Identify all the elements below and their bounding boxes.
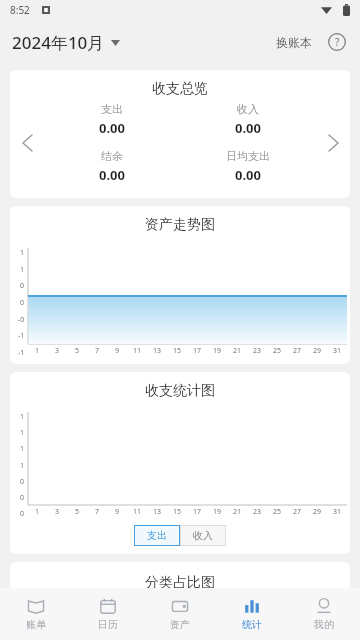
staticText: -1 (18, 331, 25, 341)
staticText: 资产 (170, 618, 190, 631)
staticText: 23 (253, 346, 262, 356)
staticText: 我的 (314, 618, 334, 631)
staticText: 15 (173, 507, 182, 517)
staticText: 1 (20, 444, 25, 454)
staticText: 0.00 (99, 119, 125, 137)
staticText: 1 (35, 346, 40, 356)
staticText: 17 (193, 346, 202, 356)
staticText: 1 (35, 507, 40, 517)
staticText: 1 (20, 461, 25, 471)
staticText: 7 (95, 507, 100, 517)
staticText: 25 (273, 346, 282, 356)
staticText: 0 (20, 477, 25, 487)
staticText: 13 (153, 346, 162, 356)
staticText: 21 (233, 507, 242, 517)
staticText: 8:52 (10, 3, 30, 17)
staticText: 0 (20, 281, 25, 291)
staticText: 0 (20, 509, 25, 519)
staticText: ? (335, 35, 340, 49)
staticText: 0 (20, 298, 25, 308)
staticText: 9 (115, 507, 120, 517)
staticText: 11 (133, 507, 142, 517)
button[interactable]: 资产 (144, 588, 216, 640)
staticText: 29 (313, 346, 322, 356)
staticText: 2024年10月 (12, 31, 105, 54)
button[interactable]: 上一月 (10, 98, 44, 188)
staticText: -0 (18, 315, 25, 325)
staticText: 支出 (101, 102, 123, 116)
button[interactable]: 2024年10月 (12, 27, 120, 58)
staticText: 5 (75, 507, 80, 517)
staticText: 19 (213, 507, 222, 517)
staticText: 29 (313, 507, 322, 517)
staticText: 账单 (26, 618, 46, 631)
button[interactable]: 帮助 (326, 31, 348, 53)
staticText: 资产走势图 (10, 216, 350, 234)
staticText: 17 (193, 507, 202, 517)
staticText: 分类占比图 (10, 574, 350, 592)
staticText: 1 (20, 248, 25, 258)
staticText: 31 (333, 507, 342, 517)
staticText: 7 (95, 346, 100, 356)
staticText: 27 (293, 507, 302, 517)
button[interactable]: 支出 (134, 525, 180, 546)
staticText: 23 (253, 507, 262, 517)
staticText: -1 (18, 348, 25, 358)
button[interactable]: 收入 (180, 525, 226, 546)
staticText: 收支总览 (10, 80, 350, 98)
staticText: 支出 (147, 529, 167, 542)
staticText: 日均支出 (226, 149, 270, 163)
staticText: 13 (153, 507, 162, 517)
staticText: 11 (133, 346, 142, 356)
staticText: 9 (115, 346, 120, 356)
staticText: 1 (20, 412, 25, 422)
button[interactable]: 统计 (216, 588, 288, 640)
button[interactable]: 日历 (72, 588, 144, 640)
staticText: 日历 (98, 618, 118, 631)
staticText: 1 (20, 265, 25, 275)
button[interactable]: 换账本 (270, 29, 318, 56)
staticText: 15 (173, 346, 182, 356)
staticText: 21 (233, 346, 242, 356)
staticText: 统计 (242, 618, 262, 631)
staticText: 0.00 (99, 166, 125, 184)
staticText: 1 (20, 428, 25, 438)
staticText: 0.00 (235, 119, 261, 137)
staticText: 19 (213, 346, 222, 356)
staticText: 27 (293, 346, 302, 356)
staticText: 0.00 (235, 166, 261, 184)
staticText: 25 (273, 507, 282, 517)
staticText: 5 (75, 346, 80, 356)
staticText: 收入 (237, 102, 259, 116)
staticText: 换账本 (276, 35, 312, 50)
staticText: 0 (20, 493, 25, 503)
button[interactable]: 我的 (288, 588, 360, 640)
staticText: 3 (55, 346, 60, 356)
staticText: 31 (333, 346, 342, 356)
staticText: 收支统计图 (10, 382, 350, 400)
button[interactable]: 账单 (0, 588, 72, 640)
staticText: 结余 (101, 149, 123, 163)
staticText: 收入 (193, 529, 213, 542)
button[interactable]: 下一月 (316, 98, 350, 188)
staticText: 3 (55, 507, 60, 517)
